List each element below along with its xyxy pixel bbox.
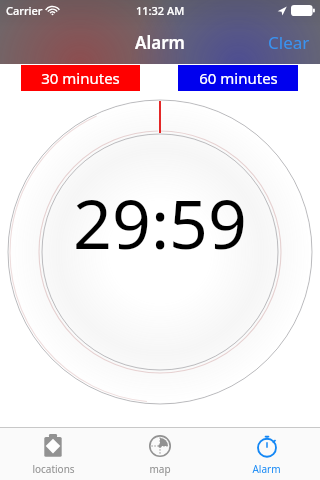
button[interactable]: 60 minutes	[178, 65, 298, 91]
staticText: Clear	[268, 31, 310, 54]
staticText: Alarm	[135, 31, 185, 54]
button[interactable]: map	[106, 428, 213, 480]
staticText: map	[149, 462, 171, 476]
staticText: 30 minutes	[41, 68, 120, 88]
staticText: 11:32 AM	[136, 3, 185, 18]
button[interactable]: Clear	[258, 23, 320, 62]
staticText: Alarm	[252, 462, 281, 476]
staticText: 29:59	[73, 176, 247, 269]
button[interactable]: locations	[0, 428, 106, 480]
staticText: locations	[32, 462, 75, 476]
button[interactable]: 30 minutes	[21, 65, 140, 91]
staticText: 60 minutes	[199, 68, 278, 88]
button[interactable]: Alarm	[213, 428, 320, 480]
staticText: Carrier	[6, 3, 43, 18]
